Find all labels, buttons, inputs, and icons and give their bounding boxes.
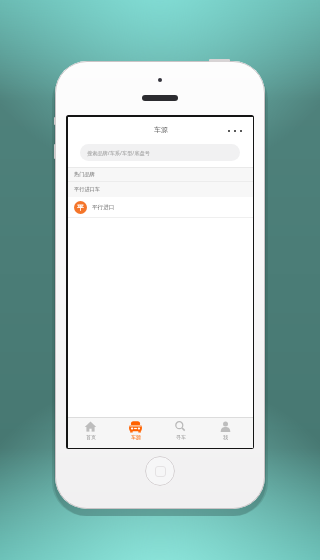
button[interactable] xyxy=(145,456,175,486)
staticText: 搜索品牌/车系/车型/底盘号 xyxy=(87,149,150,156)
staticText: 平行进口 xyxy=(92,204,115,211)
staticText: 车源 xyxy=(131,434,141,440)
button[interactable]: 车源 xyxy=(113,418,158,448)
button[interactable]: 寻车 xyxy=(158,418,203,448)
staticText: 平 xyxy=(77,204,84,212)
staticText: 热门品牌 xyxy=(74,171,95,178)
button[interactable]: 搜索品牌/车系/车型/底盘号 xyxy=(80,144,240,161)
button[interactable]: 我 xyxy=(203,418,248,448)
staticText: 平行进口车 xyxy=(74,186,100,193)
staticText: 车源 xyxy=(154,125,168,134)
button[interactable]: 平 xyxy=(68,197,253,217)
staticText: 我 xyxy=(223,434,228,440)
button[interactable]: 首页 xyxy=(68,418,113,448)
button[interactable] xyxy=(228,130,242,132)
staticText: 寻车 xyxy=(176,434,186,440)
staticText: 首页 xyxy=(86,434,96,440)
